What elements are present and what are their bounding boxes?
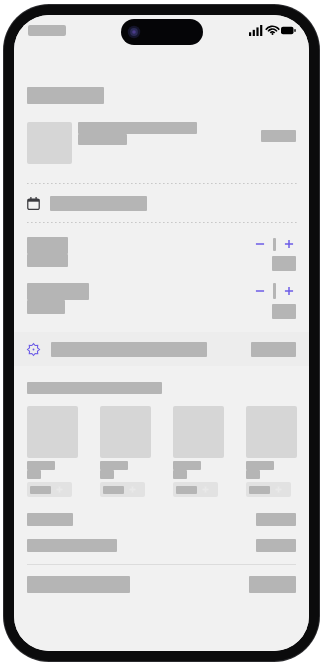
button[interactable]: Product [246,406,297,497]
button[interactable] [27,184,296,222]
button[interactable]: Product [100,406,151,497]
button[interactable]: Decrease quantity [253,237,267,251]
button[interactable]: Product [173,406,224,497]
button[interactable]: Increase quantity [282,284,296,298]
button[interactable]: Decrease quantity [253,284,267,298]
button[interactable] [27,332,296,366]
button[interactable]: Increase quantity [282,237,296,251]
button[interactable]: Product [27,406,78,497]
button[interactable] [27,122,296,164]
